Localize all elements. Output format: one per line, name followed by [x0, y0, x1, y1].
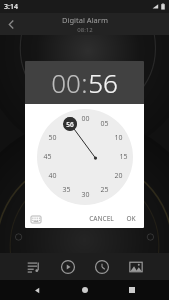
staticText: 50 — [48, 133, 57, 143]
button[interactable]: CANCEL — [85, 212, 118, 225]
staticText: 55 — [62, 119, 71, 129]
button[interactable]: Gallery — [124, 255, 148, 279]
staticText: 56 — [66, 120, 74, 129]
button[interactable]: 50 — [44, 130, 60, 146]
staticText: 30 — [81, 190, 90, 200]
staticText: 25 — [100, 185, 109, 195]
staticText: 40 — [48, 171, 57, 181]
button[interactable]: 56 — [63, 117, 77, 131]
staticText: 05 — [100, 119, 109, 129]
button[interactable]: 30 — [77, 187, 93, 203]
staticText: OK — [126, 214, 136, 223]
staticText: 08:12 — [77, 26, 93, 34]
button[interactable]: 25 — [96, 182, 112, 198]
button[interactable]: 35 — [58, 182, 74, 198]
button[interactable]: OK — [122, 212, 140, 225]
button[interactable]: 00 — [51, 65, 81, 100]
staticText: 00 — [51, 65, 81, 100]
button[interactable]: 05 — [96, 116, 112, 132]
button[interactable]: 45 — [39, 149, 55, 165]
staticText: 20 — [114, 171, 123, 181]
staticText: 3:14 — [4, 2, 18, 12]
button[interactable]: Play — [56, 255, 80, 279]
button[interactable]: 20 — [110, 168, 126, 184]
button[interactable]: Back — [0, 13, 22, 35]
button[interactable]: Home — [75, 280, 95, 300]
staticText: 35 — [62, 185, 71, 195]
staticText: CANCEL — [89, 214, 114, 223]
button[interactable]: 00 — [77, 111, 93, 127]
button[interactable]: 56 — [88, 65, 118, 100]
button[interactable]: 15 — [115, 149, 131, 165]
button[interactable]: Playlist — [22, 255, 46, 279]
button[interactable]: Switch to keyboard input — [29, 212, 43, 226]
button[interactable]: 40 — [44, 168, 60, 184]
button[interactable]: Recents — [122, 280, 142, 300]
staticText: 00 — [81, 114, 90, 124]
staticText: 10 — [114, 133, 123, 143]
button[interactable]: 10 — [110, 130, 126, 146]
staticText: Digital Alarm — [62, 15, 108, 25]
staticText: 15 — [119, 152, 128, 162]
button[interactable]: 55 — [58, 116, 74, 132]
button[interactable]: Back — [27, 280, 47, 300]
button[interactable]: Alarm — [90, 255, 114, 279]
staticText: : — [81, 65, 88, 100]
staticText: 56 — [88, 65, 118, 100]
staticText: 45 — [43, 152, 52, 162]
